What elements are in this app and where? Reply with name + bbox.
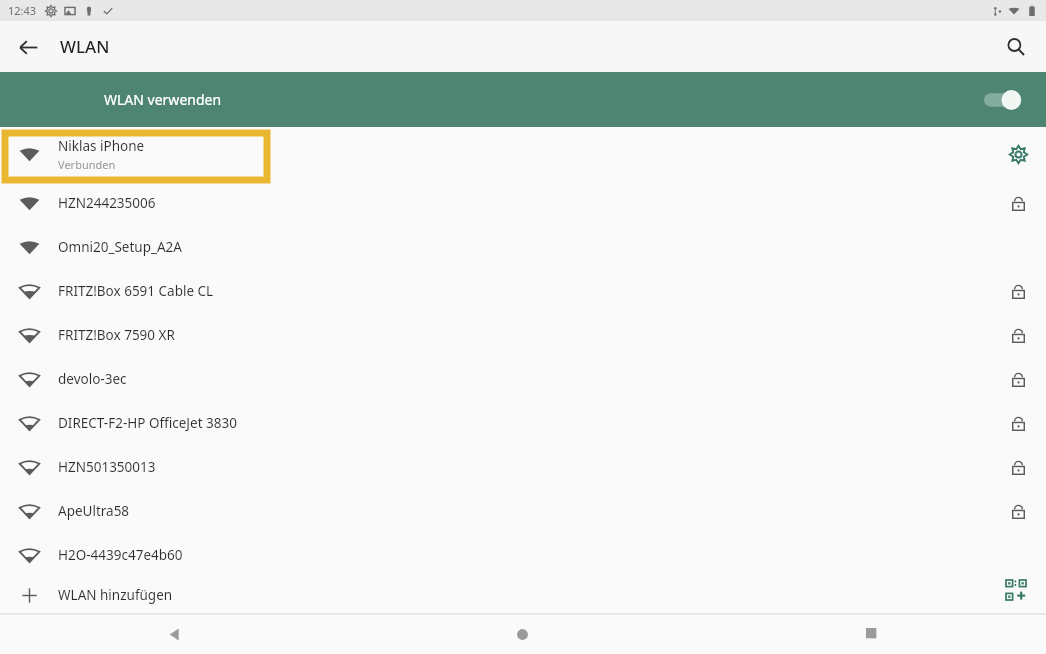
staticText: FRITZ!Box 6591 Cable CL [58, 282, 214, 300]
button[interactable]: Niklas iPhone [0, 127, 1046, 181]
staticText: WLAN verwenden [104, 90, 222, 109]
button[interactable]: devolo-3ec [0, 357, 1046, 401]
staticText: 12:43 [8, 3, 37, 18]
button[interactable]: Omni20_Setup_A2A [0, 225, 1046, 269]
staticText: H2O-4439c47e4b60 [58, 546, 183, 564]
button[interactable]: Einstellungen [1000, 136, 1036, 172]
button[interactable]: HZN501350013 [0, 445, 1046, 489]
button[interactable]: FRITZ!Box 7590 XR [0, 313, 1046, 357]
button[interactable]: Übersicht [697, 614, 1046, 654]
button[interactable]: Startbildschirm [348, 614, 697, 654]
staticText: devolo-3ec [58, 370, 127, 388]
button[interactable]: H2O-4439c47e4b60 [0, 533, 1046, 577]
button[interactable]: Zurück [0, 614, 348, 654]
staticText: WLAN [60, 35, 110, 58]
staticText: FRITZ!Box 7590 XR [58, 326, 175, 344]
button[interactable]: WLAN hinzufügen [0, 577, 1046, 613]
button[interactable]: Zurück [6, 25, 50, 69]
button[interactable]: FRITZ!Box 6591 Cable CL [0, 269, 1046, 313]
staticText: WLAN hinzufügen [58, 586, 173, 604]
staticText: Niklas iPhone [58, 137, 145, 155]
button[interactable]: WLAN verwenden [0, 72, 1046, 127]
button[interactable]: ApeUltra58 [0, 489, 1046, 533]
staticText: HZN244235006 [58, 194, 156, 212]
staticText: HZN501350013 [58, 458, 156, 476]
button[interactable]: DIRECT-F2-HP OfficeJet 3830 [0, 401, 1046, 445]
button[interactable]: HZN244235006 [0, 181, 1046, 225]
staticText: DIRECT-F2-HP OfficeJet 3830 [58, 414, 237, 432]
staticText: ApeUltra58 [58, 502, 130, 520]
button[interactable]: QR-Code scannen [996, 570, 1036, 610]
button[interactable]: Suchen [994, 25, 1038, 69]
staticText: Verbunden [58, 157, 116, 172]
staticText: Omni20_Setup_A2A [58, 238, 182, 256]
